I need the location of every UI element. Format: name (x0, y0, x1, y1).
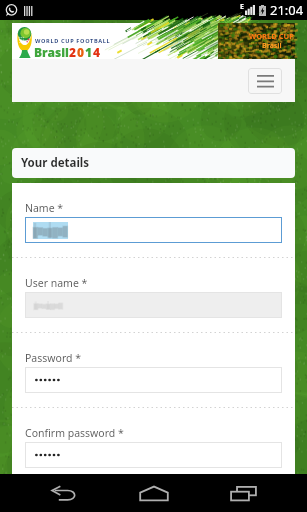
staticText: WORLD CUP FOOTBALL (35, 37, 111, 45)
button[interactable] (25, 292, 282, 318)
button[interactable]: Recent apps (207, 474, 279, 512)
button[interactable]: Your details (12, 148, 295, 178)
staticText: 2 (69, 44, 77, 59)
staticText: Brasil (262, 41, 282, 51)
staticText: Your details (21, 155, 90, 171)
button[interactable]: Back (28, 474, 100, 512)
staticText: Confirm password * (25, 426, 124, 440)
staticText: E (240, 2, 244, 12)
staticText: 0 (77, 44, 85, 59)
button[interactable] (25, 367, 282, 393)
staticText: 21:04 (270, 1, 304, 19)
staticText: 1 (85, 44, 93, 59)
button[interactable]: Menu (248, 68, 282, 94)
staticText: WORLD CUP (249, 31, 294, 41)
staticText: User name * (25, 276, 88, 290)
staticText: Name * (25, 201, 64, 215)
button[interactable]: Home (118, 474, 190, 512)
staticText: Password * (25, 351, 82, 365)
staticText: 4 (93, 44, 101, 59)
button[interactable] (25, 217, 282, 243)
staticText: Brasil (34, 44, 69, 59)
button[interactable] (25, 442, 282, 468)
